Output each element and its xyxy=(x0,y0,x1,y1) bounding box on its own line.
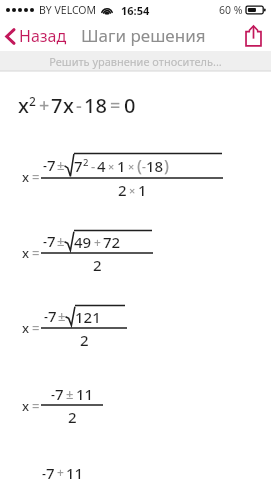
staticText: x xyxy=(22,397,30,415)
staticText: × xyxy=(129,183,136,198)
staticText: - xyxy=(51,386,55,403)
staticText: 2 xyxy=(29,93,36,109)
staticText: 2 xyxy=(68,407,77,427)
staticText: = xyxy=(32,168,40,186)
staticText: Решить уравнение относитель... xyxy=(49,54,222,69)
staticText: ) xyxy=(164,155,169,177)
staticText: BY VELCOM xyxy=(39,3,97,17)
staticText: + xyxy=(94,234,101,250)
staticText: x xyxy=(22,319,30,337)
staticText: 18 xyxy=(84,92,107,119)
staticText: 7 xyxy=(48,306,57,326)
staticText: - xyxy=(43,157,47,174)
staticText: = xyxy=(32,319,40,337)
button[interactable]: Share xyxy=(236,22,271,50)
staticText: 1 xyxy=(117,156,126,176)
staticText: 7 xyxy=(55,384,64,404)
staticText: 1 xyxy=(138,180,147,200)
staticText: 2 xyxy=(118,180,127,200)
button[interactable]: Решить уравнение относитель... xyxy=(0,51,271,71)
staticText: Назад xyxy=(19,25,67,47)
staticText: 2 xyxy=(93,255,102,275)
staticText: ± xyxy=(57,232,65,250)
staticText: 16:54 xyxy=(121,3,150,18)
staticText: 0 xyxy=(124,92,136,119)
staticText: - xyxy=(76,93,82,118)
staticText: 60 % xyxy=(219,3,243,17)
staticText: 7 xyxy=(47,155,56,175)
staticText: 7 xyxy=(46,463,55,480)
staticText: 7 xyxy=(47,231,56,251)
staticText: - xyxy=(91,157,96,175)
staticText: ± xyxy=(57,156,65,174)
staticText: 49 xyxy=(74,232,92,252)
staticText: 4 xyxy=(97,156,106,176)
staticText: ( xyxy=(137,155,142,177)
staticText: 72 xyxy=(103,232,121,252)
button[interactable]: Назад xyxy=(0,22,75,50)
staticText: ± xyxy=(58,307,66,325)
staticText: = xyxy=(32,244,40,262)
staticText: ± xyxy=(66,385,74,403)
staticText: - xyxy=(44,308,48,325)
staticText: Шаги решения xyxy=(81,24,206,47)
staticText: × xyxy=(128,159,135,174)
staticText: x xyxy=(63,92,74,119)
staticText: - xyxy=(142,158,146,174)
staticText: 7 xyxy=(51,92,63,119)
staticText: x xyxy=(22,244,30,262)
staticText: + xyxy=(57,464,64,480)
staticText: - xyxy=(42,465,46,480)
staticText: 18 xyxy=(146,156,164,176)
staticText: × xyxy=(108,159,115,174)
staticText: 121 xyxy=(75,307,101,327)
staticText: = xyxy=(32,397,40,415)
staticText: - xyxy=(43,233,47,250)
staticText: 2 xyxy=(83,156,89,169)
staticText: + xyxy=(39,93,50,118)
staticText: x xyxy=(22,168,30,186)
staticText: 11 xyxy=(76,384,94,404)
staticText: 7 xyxy=(74,156,83,176)
staticText: = xyxy=(110,93,121,118)
staticText: 2 xyxy=(80,330,89,350)
staticText: 11 xyxy=(66,463,84,480)
staticText: x xyxy=(18,92,29,119)
